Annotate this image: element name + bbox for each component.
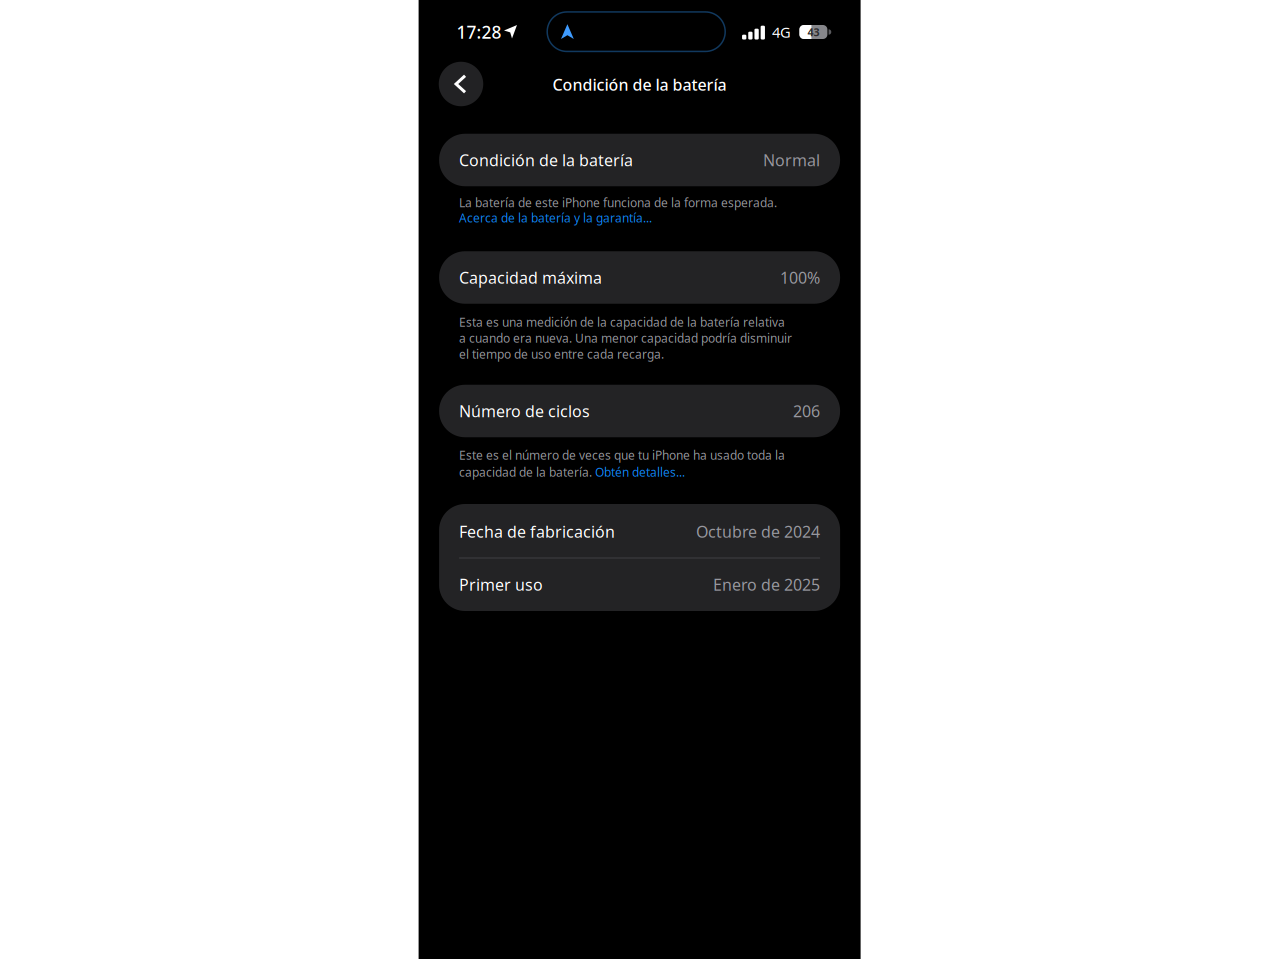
button[interactable]: Obtén detalles... (595, 464, 685, 480)
staticText: Acerca de la batería y la garantía... (459, 210, 652, 226)
staticText: capacidad de la batería. (459, 464, 595, 480)
staticText: La batería de este iPhone funciona de la… (459, 195, 777, 210)
staticText: Octubre de 2024 (696, 521, 820, 542)
staticText: Condición de la batería (459, 149, 633, 171)
staticText: Número de ciclos (459, 400, 590, 422)
staticText: Normal (763, 149, 820, 171)
staticText: Obtén detalles... (595, 464, 685, 480)
staticText: a cuando era nueva. Una menor capacidad … (459, 330, 792, 346)
staticText: Fecha de fabricación (459, 521, 615, 542)
staticText: Capacidad máxima (459, 267, 602, 288)
staticText: el tiempo de uso entre cada recarga. (459, 346, 664, 362)
staticText: Este es el número de veces que tu iPhone… (459, 447, 785, 463)
staticText: 206 (793, 400, 820, 422)
button[interactable]: Acerca de la batería y la garantía... (459, 210, 836, 226)
staticText: Enero de 2025 (713, 574, 820, 595)
staticText: Esta es una medición de la capacidad de … (459, 314, 785, 330)
button[interactable]: Atrás (439, 62, 483, 106)
staticText: 4G (772, 22, 791, 42)
staticText: Condición de la batería (553, 74, 727, 95)
staticText: Primer uso (459, 574, 543, 595)
staticText: 43 (807, 25, 819, 39)
staticText: 17:28 (456, 20, 501, 43)
staticText: 100% (780, 267, 820, 288)
